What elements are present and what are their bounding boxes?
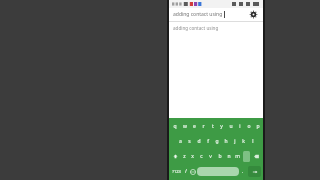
button[interactable]: i xyxy=(235,120,244,133)
button[interactable]: Change keyboard language xyxy=(189,165,197,178)
button[interactable]: w xyxy=(180,120,190,133)
button[interactable]: Key pressed xyxy=(243,151,250,162)
staticText: d xyxy=(197,138,201,145)
staticText: s xyxy=(188,138,191,145)
staticText: . xyxy=(242,168,244,175)
staticText: a xyxy=(179,138,182,145)
staticText: w xyxy=(183,123,187,130)
button[interactable]: p xyxy=(253,120,262,133)
button[interactable]: n xyxy=(224,150,233,163)
button[interactable]: h xyxy=(221,135,230,148)
button[interactable]: t xyxy=(208,120,217,133)
button[interactable]: c xyxy=(197,150,206,163)
button[interactable]: u xyxy=(226,120,235,133)
button[interactable]: . xyxy=(239,165,247,178)
staticText: adding contact using xyxy=(173,11,223,18)
staticText: t xyxy=(212,123,214,130)
button[interactable]: o xyxy=(244,120,253,133)
staticText: h xyxy=(224,138,228,145)
button[interactable]: Space xyxy=(197,167,239,176)
staticText: u xyxy=(229,123,233,130)
staticText: i xyxy=(239,123,241,130)
staticText: n xyxy=(227,153,231,160)
button[interactable]: j xyxy=(230,135,239,148)
button[interactable]: Clear search xyxy=(248,9,259,20)
staticText: o xyxy=(247,123,251,130)
button[interactable]: v xyxy=(206,150,215,163)
staticText: b xyxy=(218,153,222,160)
button[interactable]: ?123 xyxy=(170,165,182,178)
button[interactable]: r xyxy=(199,120,208,133)
staticText: f xyxy=(207,138,209,145)
staticText: / xyxy=(185,168,187,175)
button[interactable]: m xyxy=(233,150,242,163)
button[interactable]: g xyxy=(212,135,221,148)
button[interactable]: d xyxy=(194,135,203,148)
staticText: v xyxy=(209,153,212,160)
staticText: m xyxy=(235,153,240,160)
button[interactable]: f xyxy=(203,135,212,148)
button[interactable]: s xyxy=(185,135,194,148)
staticText: l xyxy=(252,138,254,145)
button[interactable]: a xyxy=(176,135,185,148)
staticText: e xyxy=(193,123,196,130)
button[interactable]: Backspace xyxy=(251,150,262,163)
staticText: q xyxy=(173,123,177,130)
staticText: c xyxy=(200,153,203,160)
staticText: p xyxy=(256,123,260,130)
button[interactable]: adding contact using xyxy=(169,8,263,21)
staticText: adding contact using xyxy=(173,25,219,31)
button[interactable]: l xyxy=(248,135,257,148)
button[interactable]: x xyxy=(188,150,197,163)
staticText: r xyxy=(202,123,205,130)
button[interactable]: e xyxy=(190,120,199,133)
button[interactable]: adding contact using xyxy=(169,22,263,33)
staticText: g xyxy=(215,138,219,145)
button[interactable]: Enter xyxy=(248,166,261,177)
button[interactable]: b xyxy=(215,150,224,163)
staticText: x xyxy=(191,153,194,160)
button[interactable]: k xyxy=(239,135,248,148)
button[interactable]: q xyxy=(170,120,180,133)
button[interactable]: y xyxy=(217,120,226,133)
staticText: y xyxy=(220,123,223,130)
staticText: j xyxy=(234,138,236,145)
button[interactable]: / xyxy=(182,165,189,178)
button[interactable]: Shift xyxy=(170,150,180,163)
button[interactable]: z xyxy=(180,150,188,163)
staticText: z xyxy=(183,153,186,160)
staticText: k xyxy=(242,138,245,145)
staticText: ?123 xyxy=(172,169,181,174)
